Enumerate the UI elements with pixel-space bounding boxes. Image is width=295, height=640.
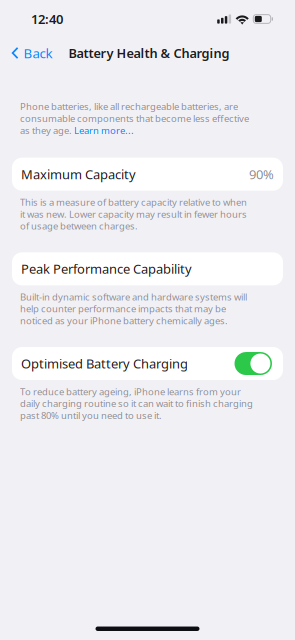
staticText: Optimised Battery Charging bbox=[21, 355, 188, 372]
staticText: Maximum Capacity bbox=[21, 165, 136, 183]
staticText: 12:40 bbox=[31, 10, 63, 28]
staticText: To reduce battery ageing, iPhone learns … bbox=[20, 385, 253, 422]
staticText: 90% bbox=[249, 165, 274, 183]
staticText: Phone batteries, like all rechargeable b… bbox=[20, 100, 249, 137]
staticText: Back bbox=[23, 44, 52, 62]
button[interactable]: Back bbox=[0, 37, 61, 69]
staticText: Peak Performance Capability bbox=[21, 260, 192, 278]
staticText: Built-in dynamic software and hardware s… bbox=[20, 290, 247, 327]
button[interactable]: Maximum Capacity bbox=[12, 158, 283, 191]
staticText: This is a measure of battery capacity re… bbox=[20, 196, 247, 232]
button[interactable]: Peak Performance Capability bbox=[12, 252, 283, 285]
button[interactable]: Optimised Battery Charging bbox=[12, 347, 283, 380]
staticText: Battery Health & Charging bbox=[68, 44, 229, 62]
